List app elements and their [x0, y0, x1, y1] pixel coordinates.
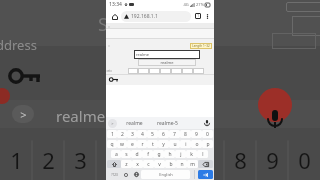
button[interactable]: 5: [147, 130, 158, 138]
staticText: ddress: [0, 36, 37, 54]
staticText: realme-5: [157, 120, 178, 127]
button[interactable]: ?123: [107, 170, 121, 179]
staticText: m: [190, 161, 195, 168]
staticText: v: [158, 161, 161, 168]
staticText: u: [173, 141, 177, 148]
button[interactable]: b: [165, 160, 176, 168]
staticText: i: [185, 141, 187, 148]
button[interactable]: Shift: [107, 160, 121, 168]
staticText: Length 1~32: [192, 44, 210, 48]
button[interactable]: p: [202, 140, 213, 148]
button[interactable]: r: [137, 140, 147, 148]
button[interactable]: h: [164, 150, 175, 158]
button[interactable]: realme: [134, 50, 200, 59]
button[interactable]: Voice input: [202, 118, 212, 128]
button[interactable]: 9: [191, 130, 202, 138]
button[interactable]: 6: [158, 130, 169, 138]
staticText: 1: [197, 14, 199, 18]
staticText: 0: [298, 145, 311, 175]
button[interactable]: Tabs: [193, 11, 203, 21]
staticText: realme: [126, 120, 143, 127]
staticText: k: [190, 151, 193, 158]
button[interactable]: x: [132, 160, 143, 168]
button[interactable]: y: [158, 140, 169, 148]
staticText: 9: [266, 145, 279, 175]
button[interactable]: i: [180, 140, 191, 148]
button[interactable]: 192.168.1.1: [121, 11, 191, 22]
staticText: r: [141, 141, 144, 148]
button[interactable]: o: [191, 140, 202, 148]
button[interactable]: l: [197, 150, 208, 158]
staticText: p: [206, 141, 210, 148]
button[interactable]: j: [175, 150, 186, 158]
button[interactable]: a: [111, 150, 121, 158]
staticText: 13:34: [109, 1, 122, 8]
button[interactable]: s: [121, 150, 131, 158]
staticText: h: [168, 151, 172, 158]
staticText: realme: [160, 60, 174, 65]
button[interactable]: English: [141, 170, 190, 179]
staticText: 9: [195, 131, 198, 138]
staticText: s: [125, 151, 128, 158]
staticText: x: [136, 161, 139, 168]
staticText: 6: [162, 131, 165, 138]
button[interactable]: g: [153, 150, 164, 158]
button[interactable]: realme-5: [154, 120, 181, 127]
button[interactable]: k: [186, 150, 197, 158]
button[interactable]: t: [147, 140, 158, 148]
staticText: f: [147, 151, 149, 158]
staticText: q: [110, 141, 114, 148]
button[interactable]: f: [142, 150, 153, 158]
button[interactable]: 2: [117, 130, 127, 138]
button[interactable]: Emoji: [121, 169, 131, 180]
staticText: c: [147, 161, 150, 168]
button[interactable]: realme: [123, 120, 146, 127]
button[interactable]: 7: [169, 130, 180, 138]
button[interactable]: e: [127, 140, 137, 148]
staticText: b: [169, 161, 173, 168]
staticText: g: [157, 151, 161, 158]
staticText: ::: [108, 24, 111, 29]
button[interactable]: c: [143, 160, 154, 168]
button[interactable]: v: [154, 160, 165, 168]
button[interactable]: realme: [138, 59, 196, 66]
staticText: l: [202, 151, 204, 158]
staticText: 0: [206, 131, 209, 138]
staticText: z: [125, 161, 128, 168]
button[interactable]: z: [121, 160, 132, 168]
staticText: ?123: [111, 173, 118, 177]
staticText: English: [159, 172, 173, 177]
staticText: 7: [173, 131, 176, 138]
staticText: 8: [184, 131, 187, 138]
staticText: 7: [202, 145, 215, 175]
button[interactable]: 8: [180, 130, 191, 138]
button[interactable]: Change language: [131, 169, 141, 180]
button[interactable]: Expand suggestions: [108, 119, 117, 128]
staticText: a: [115, 151, 118, 158]
button[interactable]: d: [131, 150, 142, 158]
staticText: realme: [136, 52, 150, 57]
button[interactable]: n: [176, 160, 187, 168]
staticText: 3: [74, 145, 87, 175]
button[interactable]: Next field: [198, 170, 213, 179]
button[interactable]: w: [117, 140, 127, 148]
staticText: y: [162, 141, 165, 148]
button[interactable]: Backspace: [198, 160, 213, 168]
staticText: 6: [170, 145, 183, 175]
button[interactable]: m: [187, 160, 198, 168]
button[interactable]: 1: [107, 130, 117, 138]
button[interactable]: u: [169, 140, 180, 148]
staticText: ::: [108, 43, 111, 48]
staticText: 1: [10, 145, 23, 175]
staticText: n: [180, 161, 184, 168]
staticText: 5: [138, 145, 151, 175]
staticText: >: [111, 121, 114, 126]
button[interactable]: More options: [203, 12, 211, 20]
button[interactable]: Home: [109, 11, 120, 22]
button[interactable]: 0: [202, 130, 213, 138]
button[interactable]: q: [107, 140, 117, 148]
button[interactable]: 4: [137, 130, 147, 138]
staticText: 5: [151, 131, 154, 138]
button[interactable]: 3: [127, 130, 137, 138]
staticText: 8: [234, 145, 247, 175]
